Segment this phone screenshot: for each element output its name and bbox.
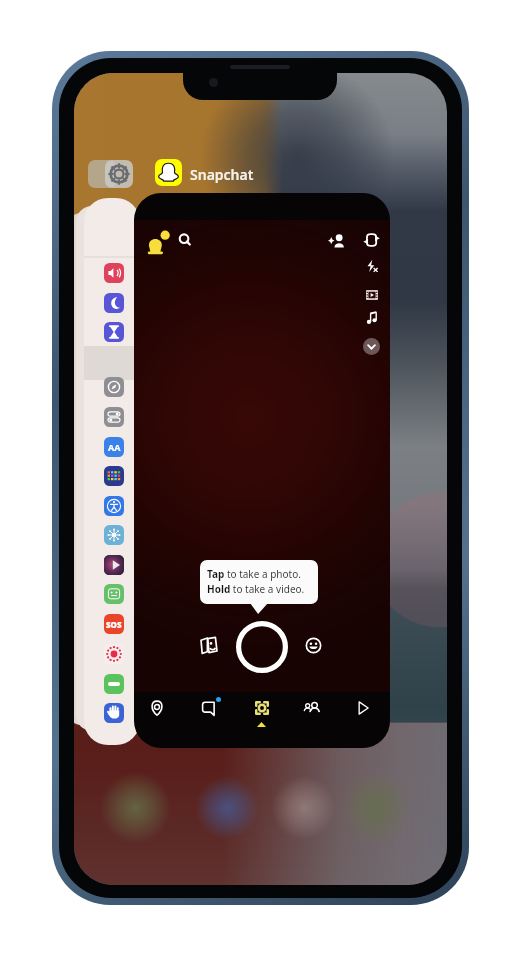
button[interactable]: Add friends — [328, 232, 346, 250]
staticText: AA — [108, 441, 121, 453]
button[interactable]: Setting 9 — [104, 555, 124, 575]
staticText: Snapchat — [190, 165, 254, 184]
button[interactable]: Setting 7 — [104, 496, 124, 516]
button[interactable]: Setting 11 — [104, 614, 124, 634]
button[interactable]: Spotlight — [355, 700, 371, 716]
button[interactable]: Setting 1 — [104, 293, 124, 313]
button[interactable]: App Store — [88, 160, 116, 188]
button[interactable]: Setting 4 — [104, 407, 124, 427]
button[interactable]: More options — [363, 338, 380, 355]
button[interactable]: Setting 8 — [104, 525, 124, 545]
button[interactable]: Take photo — [236, 621, 288, 673]
button[interactable]: Setting 10 — [104, 584, 124, 604]
button[interactable]: Camera — [254, 700, 270, 716]
button[interactable]: Settings — [105, 160, 133, 188]
button[interactable]: Profile — [134, 193, 390, 748]
button[interactable]: Lenses — [305, 637, 322, 654]
button[interactable]: Night mode — [365, 288, 379, 302]
button[interactable]: Profile — [145, 229, 173, 257]
button[interactable]: Setting 6 — [104, 466, 124, 486]
button[interactable]: Chat — [201, 700, 217, 716]
button[interactable]: Flip camera — [365, 233, 379, 247]
button[interactable]: Setting 5 — [104, 437, 124, 457]
button[interactable]: Flash off — [365, 259, 379, 273]
button[interactable]: Setting 2 — [104, 322, 124, 342]
button[interactable]: Setting 13 — [104, 674, 124, 694]
button[interactable]: Snapchat — [155, 159, 281, 188]
button[interactable]: Setting 0 — [84, 198, 140, 745]
button[interactable]: Music — [365, 311, 379, 325]
staticText: Tap to take a photo. Hold to take a vide… — [207, 567, 305, 596]
button[interactable]: Memories — [199, 635, 219, 655]
button[interactable]: Map — [149, 700, 165, 716]
button[interactable]: Stories — [304, 700, 320, 716]
staticText: SOS — [106, 619, 122, 630]
button[interactable]: Setting 12 — [104, 644, 124, 664]
button[interactable]: Search — [177, 232, 193, 248]
button[interactable]: Setting 3 — [104, 377, 124, 397]
button[interactable]: Setting 0 — [104, 263, 124, 283]
button[interactable]: Setting 14 — [104, 703, 124, 723]
